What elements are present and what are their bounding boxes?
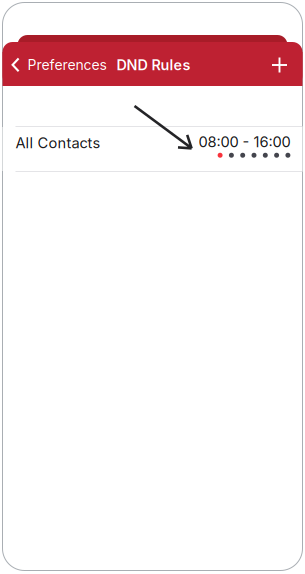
button[interactable]: All Contacts: [2, 126, 302, 172]
staticText: All Contacts: [15, 134, 100, 152]
button[interactable]: Add rule: [261, 47, 302, 81]
staticText: Preferences: [27, 56, 106, 73]
staticText: 08:00 - 16:00: [198, 133, 290, 151]
button[interactable]: Preferences: [2, 46, 110, 81]
button[interactable]: DND Rules: [110, 46, 190, 82]
staticText: DND Rules: [116, 56, 190, 74]
